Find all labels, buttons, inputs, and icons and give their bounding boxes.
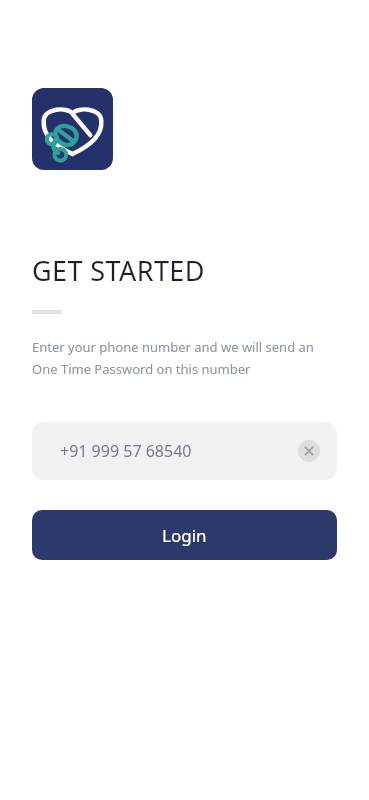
staticText: Login xyxy=(162,524,207,547)
staticText: Enter your phone number and we will send… xyxy=(32,338,314,378)
staticText: +91 999 57 68540 xyxy=(60,440,192,462)
staticText: GET STARTED xyxy=(32,252,205,289)
button[interactable]: Login xyxy=(32,510,337,560)
button[interactable]: App logo xyxy=(32,88,113,170)
button[interactable]: +91 999 57 68540 xyxy=(32,422,337,480)
button[interactable]: Clear phone number xyxy=(298,440,320,462)
